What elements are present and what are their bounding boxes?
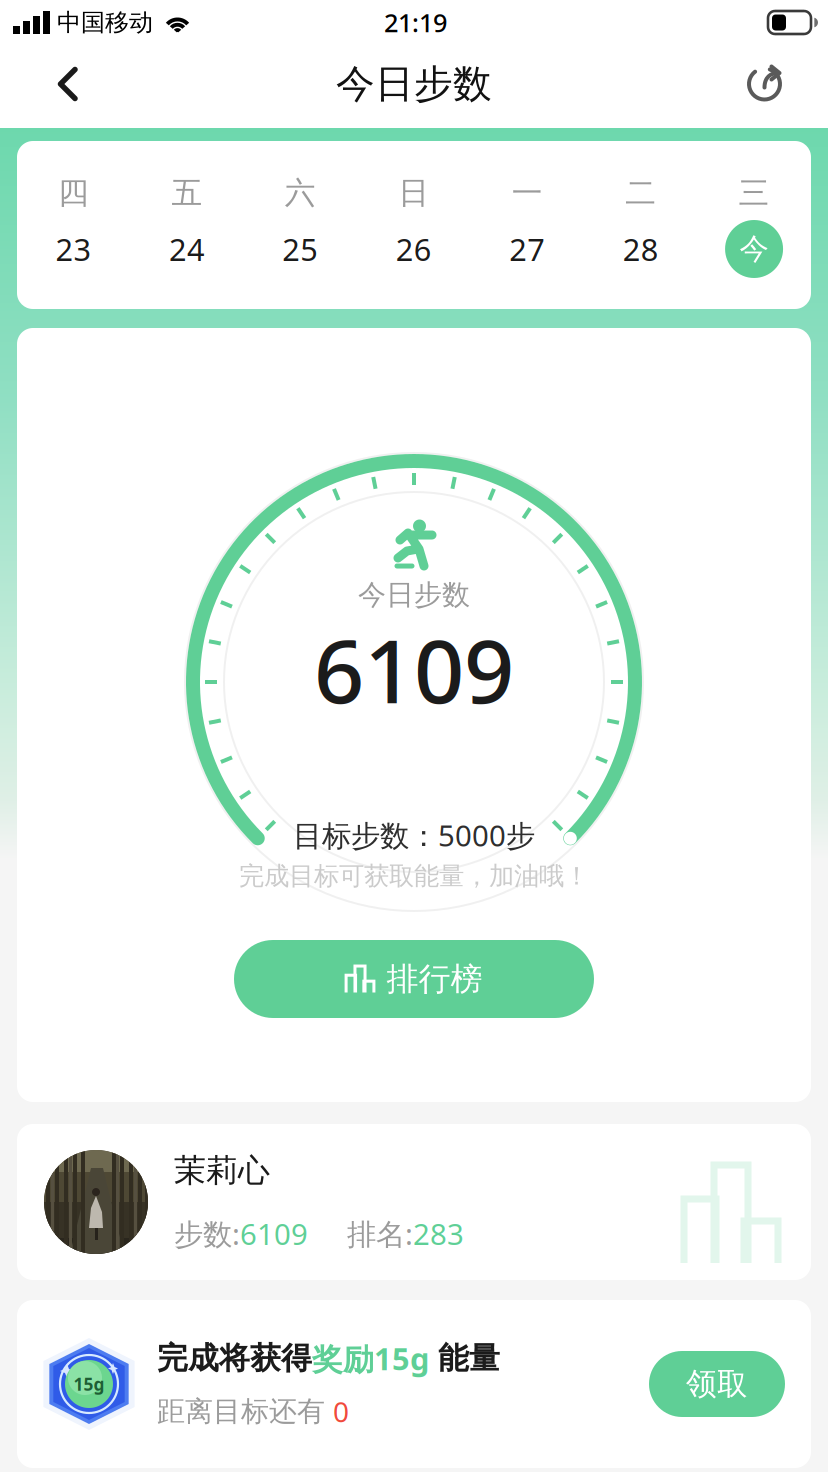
button[interactable]: 返回: [0, 52, 106, 115]
staticText: 完成目标可获取能量，加油哦！: [239, 860, 589, 891]
button[interactable]: 排行榜: [234, 940, 594, 1018]
staticText: 排名:: [347, 1214, 413, 1253]
staticText: 28: [623, 229, 659, 269]
button[interactable]: 茉莉心: [17, 1124, 811, 1280]
staticText: 今日步数: [336, 60, 492, 108]
staticText: 283: [413, 1214, 464, 1253]
staticText: 今: [740, 231, 769, 267]
staticText: 目标步数：5000步: [293, 815, 535, 854]
staticText: 日: [398, 174, 429, 212]
staticText: 距离目标还有: [157, 1394, 333, 1429]
staticText: 21:19: [384, 6, 447, 39]
staticText: 一: [512, 174, 543, 212]
staticText: 四: [58, 174, 89, 212]
staticText: 26: [396, 229, 432, 269]
staticText: 完成将获得: [157, 1340, 312, 1377]
staticText: 奖励15g: [312, 1338, 429, 1379]
button[interactable]: 日: [357, 141, 471, 309]
button[interactable]: 三: [698, 141, 811, 309]
staticText: 领取: [686, 1365, 748, 1403]
staticText: 二: [625, 174, 656, 212]
staticText: 今日步数: [358, 578, 470, 612]
staticText: 23: [55, 229, 91, 269]
staticText: 24: [169, 229, 205, 269]
staticText: 27: [509, 229, 545, 269]
staticText: 六: [285, 174, 316, 212]
button[interactable]: 二: [584, 141, 697, 309]
staticText: 步数:: [174, 1214, 240, 1253]
staticText: 15g: [73, 1372, 104, 1395]
staticText: 能量: [429, 1340, 500, 1377]
staticText: 茉莉心: [174, 1151, 270, 1190]
button[interactable]: 分享: [719, 52, 828, 116]
staticText: 25: [282, 229, 318, 269]
staticText: 排行榜: [386, 959, 482, 999]
button[interactable]: 四: [17, 141, 130, 309]
button[interactable]: 六: [244, 141, 357, 309]
staticText: 中国移动: [57, 8, 153, 37]
staticText: 五: [171, 174, 202, 212]
staticText: 0: [333, 1393, 349, 1430]
button[interactable]: 领取: [649, 1351, 785, 1417]
button[interactable]: 一: [471, 141, 584, 309]
staticText: 三: [739, 174, 770, 212]
staticText: 6109: [314, 611, 514, 727]
button[interactable]: 五: [130, 141, 244, 309]
staticText: 6109: [240, 1214, 308, 1253]
